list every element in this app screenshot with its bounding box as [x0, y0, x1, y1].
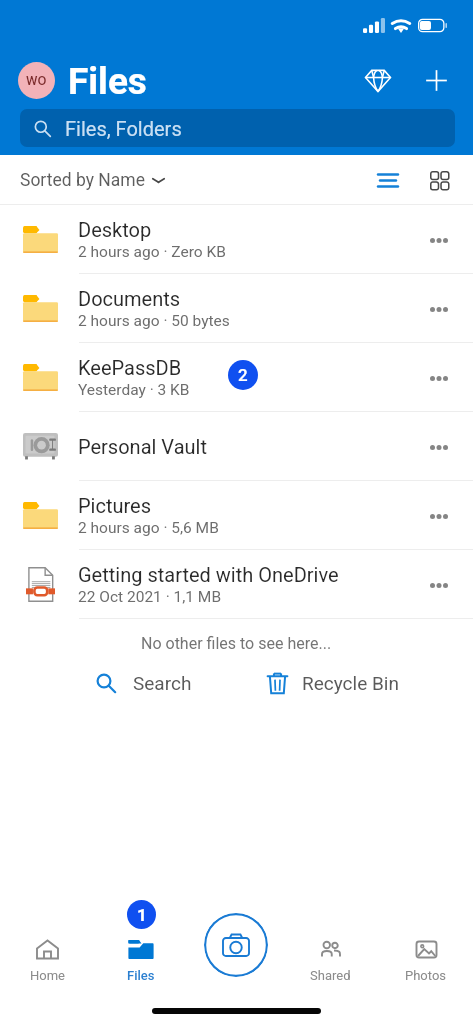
button[interactable]: More options	[415, 216, 463, 264]
button[interactable]: Add	[412, 60, 460, 100]
staticText: No other files to see here...	[141, 634, 332, 653]
button[interactable]: Grid view	[419, 160, 459, 200]
button[interactable]: KeePassDB	[0, 343, 473, 412]
staticText: Files	[127, 968, 155, 983]
button[interactable]: Search	[88, 665, 200, 701]
button[interactable]: 2	[228, 360, 258, 390]
staticText: Documents	[78, 287, 181, 310]
staticText: 2 hours ago · 5,6 MB	[78, 519, 219, 537]
staticText: Getting started with OneDrive	[78, 563, 339, 586]
button[interactable]: Photos	[378, 889, 473, 1024]
button[interactable]: Files, Folders	[20, 109, 455, 147]
staticText: Recycle Bin	[302, 672, 399, 694]
staticText: Personal Vault	[78, 435, 207, 458]
staticText: Files, Folders	[65, 117, 182, 140]
staticText: Photos	[405, 968, 447, 983]
button[interactable]: Desktop	[0, 205, 473, 274]
button[interactable]: Shared	[283, 889, 378, 1024]
staticText: Sorted by Name	[20, 170, 145, 191]
button[interactable]: Sorted by Name	[15, 164, 170, 197]
button[interactable]: More options	[415, 285, 463, 333]
button[interactable]: Account	[18, 62, 55, 99]
button[interactable]: More options	[415, 492, 463, 540]
staticText: WO	[26, 73, 47, 88]
staticText: Desktop	[78, 218, 152, 241]
button[interactable]: Files	[94, 889, 188, 1024]
button[interactable]: Personal Vault	[0, 412, 473, 481]
button[interactable]: Documents	[0, 274, 473, 343]
staticText: 22 Oct 2021 · 1,1 MB	[78, 588, 222, 606]
staticText: KeePassDB	[78, 356, 182, 379]
button[interactable]: Getting started with OneDrive	[0, 550, 473, 619]
button[interactable]: List view	[368, 160, 408, 200]
staticText: 2 hours ago · Zero KB	[78, 243, 226, 261]
staticText: Yesterday · 3 KB	[78, 381, 190, 399]
button[interactable]: Home	[0, 889, 94, 1024]
button[interactable]: Camera	[204, 913, 268, 977]
button[interactable]: Recycle Bin	[259, 664, 407, 702]
button[interactable]: More options	[415, 423, 463, 471]
staticText: Files	[68, 60, 147, 100]
button[interactable]: Pictures	[0, 481, 473, 550]
button[interactable]: More options	[415, 354, 463, 402]
staticText: Shared	[310, 968, 351, 983]
staticText: Pictures	[78, 494, 152, 517]
staticText: Home	[30, 968, 65, 983]
staticText: 2 hours ago · 50 bytes	[78, 312, 230, 330]
button[interactable]: More options	[415, 561, 463, 609]
staticText: 1	[137, 905, 147, 925]
staticText: Search	[133, 672, 192, 694]
staticText: 2	[238, 365, 248, 385]
button[interactable]: Premium	[354, 60, 402, 100]
